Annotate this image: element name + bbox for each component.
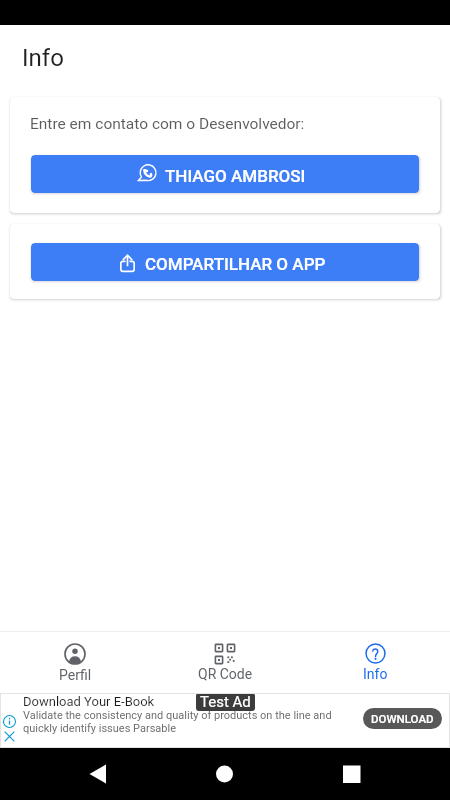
button[interactable]: Perfil bbox=[0, 632, 150, 693]
staticText: Perfil bbox=[59, 667, 92, 683]
button[interactable]: QR Code bbox=[150, 632, 300, 693]
staticText: DOWNLOAD bbox=[371, 712, 434, 725]
other: Share bbox=[118, 253, 137, 272]
button[interactable]: Ad information bbox=[3, 715, 16, 728]
button[interactable]: Info bbox=[300, 632, 450, 693]
staticText: THIAGO AMBROSI bbox=[165, 166, 306, 186]
staticText: Info bbox=[22, 44, 64, 72]
button[interactable]: WhatsApp bbox=[31, 155, 419, 193]
staticText: Entre em contato com o Desenvolvedor: bbox=[30, 115, 305, 133]
staticText: Validate the consistency and quality of … bbox=[23, 709, 332, 735]
button[interactable]: Close ad bbox=[4, 731, 15, 742]
staticText: QR Code bbox=[198, 666, 253, 682]
button[interactable]: Share bbox=[31, 243, 419, 281]
other: WhatsApp bbox=[137, 164, 157, 184]
button[interactable]: DOWNLOAD bbox=[363, 708, 442, 729]
staticText: Download Your E-Book bbox=[23, 694, 155, 709]
staticText: Test Ad bbox=[200, 693, 251, 711]
staticText: COMPARTILHAR O APP bbox=[145, 254, 326, 274]
staticText: Info bbox=[363, 666, 388, 682]
